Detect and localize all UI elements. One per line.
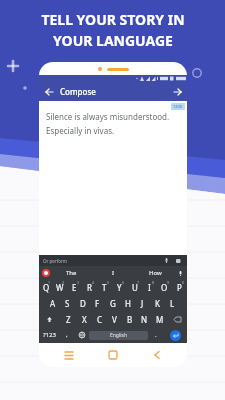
staticText: 6 <box>122 280 125 285</box>
button[interactable]: D <box>75 295 90 311</box>
button[interactable]: P <box>172 279 187 295</box>
staticText: 2 <box>62 280 65 285</box>
button[interactable]: E <box>67 279 82 295</box>
button[interactable]: Back <box>42 85 55 98</box>
button[interactable]: Camera <box>174 256 183 265</box>
staticText: Z <box>66 314 71 325</box>
staticText: 8 <box>152 280 155 285</box>
staticText: 4 <box>92 280 95 285</box>
button[interactable]: W <box>53 279 67 295</box>
staticText: C <box>97 314 103 325</box>
button[interactable]: Language <box>74 327 89 343</box>
button[interactable]: Recents <box>61 347 77 363</box>
staticText: Y <box>117 282 122 293</box>
staticText: Q <box>43 282 50 293</box>
button[interactable]: N <box>137 311 152 327</box>
staticText: K <box>155 298 160 309</box>
staticText: R <box>87 282 92 293</box>
button[interactable]: T <box>97 279 112 295</box>
staticText: I <box>112 269 115 277</box>
button[interactable]: X <box>76 311 92 327</box>
staticText: Compose <box>60 86 96 97</box>
staticText: X <box>82 314 87 325</box>
button[interactable]: M <box>152 311 167 327</box>
button[interactable]: R <box>82 279 97 295</box>
button[interactable]: . <box>148 327 163 343</box>
staticText: P <box>177 282 182 293</box>
button[interactable]: U <box>127 279 142 295</box>
staticText: G <box>110 298 116 309</box>
staticText: 9 <box>167 280 170 285</box>
staticText: How <box>149 269 162 277</box>
staticText: ?123 <box>43 331 56 339</box>
staticText: B <box>127 314 133 325</box>
button[interactable]: Home <box>105 347 121 363</box>
staticText: 3 <box>77 280 80 285</box>
staticText: Or perform <box>43 258 68 264</box>
button[interactable]: ?123 <box>39 327 59 343</box>
staticText: H <box>125 298 131 309</box>
staticText: L <box>170 298 175 309</box>
button[interactable]: Back <box>149 347 165 363</box>
staticText: F <box>95 298 100 309</box>
staticText: English <box>110 332 128 339</box>
button[interactable]: F <box>90 295 105 311</box>
staticText: Especially in vivas. <box>46 125 115 136</box>
button[interactable]: Voice input <box>176 269 184 277</box>
staticText: Silence is always misunderstood. <box>46 111 170 122</box>
button[interactable]: Voice <box>162 256 171 265</box>
staticText: TELL YOUR STORY IN <box>41 10 185 29</box>
staticText: 1 <box>48 280 51 285</box>
staticText: , <box>66 331 68 339</box>
button[interactable]: L <box>165 295 180 311</box>
button[interactable]: S <box>60 295 75 311</box>
button[interactable]: Z <box>60 311 76 327</box>
button[interactable]: , <box>59 327 74 343</box>
button[interactable]: Enter <box>163 327 187 343</box>
staticText: YOUR LANGUAGE <box>53 31 173 50</box>
button[interactable]: I <box>92 266 134 279</box>
button[interactable]: J <box>135 295 150 311</box>
button[interactable]: The <box>50 266 92 279</box>
staticText: M <box>156 314 164 325</box>
staticText: J <box>141 298 144 309</box>
staticText: I <box>148 282 151 293</box>
staticText: 5 <box>107 280 110 285</box>
button[interactable]: Shift <box>39 311 60 327</box>
staticText: E <box>72 282 77 293</box>
staticText: The <box>66 269 77 277</box>
button[interactable]: Q <box>39 279 53 295</box>
staticText: 7 <box>137 280 140 285</box>
staticText: W <box>56 282 64 293</box>
staticText: 0 <box>182 280 185 285</box>
staticText: U <box>132 282 138 293</box>
button[interactable]: How <box>134 266 176 279</box>
button[interactable]: H <box>120 295 135 311</box>
button[interactable]: B <box>122 311 137 327</box>
button[interactable]: A <box>45 295 60 311</box>
button[interactable]: Send <box>171 85 184 98</box>
staticText: V <box>112 314 117 325</box>
staticText: 1200 <box>173 104 183 109</box>
button[interactable]: C <box>92 311 107 327</box>
staticText: O <box>161 282 168 293</box>
button[interactable]: G <box>105 295 120 311</box>
button[interactable]: V <box>107 311 122 327</box>
staticText: S <box>65 298 70 309</box>
staticText: D <box>80 298 86 309</box>
button[interactable]: O <box>157 279 172 295</box>
button[interactable]: English <box>89 331 148 340</box>
staticText: A <box>50 298 56 309</box>
button[interactable]: I <box>142 279 157 295</box>
staticText: N <box>141 314 148 325</box>
button[interactable]: Backspace <box>167 311 187 327</box>
staticText: . <box>155 331 157 339</box>
button[interactable]: Y <box>112 279 127 295</box>
staticText: T <box>102 282 107 293</box>
button[interactable]: K <box>150 295 165 311</box>
